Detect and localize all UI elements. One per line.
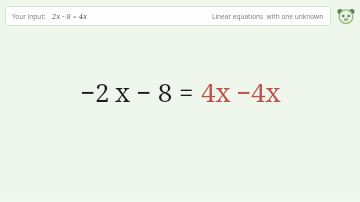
button[interactable]: Your input: xyxy=(5,6,331,26)
staticText: − 8 = xyxy=(136,74,194,109)
staticText: 2x − 8 = 4x xyxy=(52,11,88,21)
staticText: 4x xyxy=(201,74,231,109)
staticText: −4x xyxy=(236,74,281,109)
button[interactable]: App logo xyxy=(336,6,356,26)
staticText: Your input: xyxy=(12,12,46,21)
staticText: −2 xyxy=(80,74,110,109)
staticText: x xyxy=(115,74,131,109)
staticText: Linear equations with one unknown xyxy=(212,12,324,21)
